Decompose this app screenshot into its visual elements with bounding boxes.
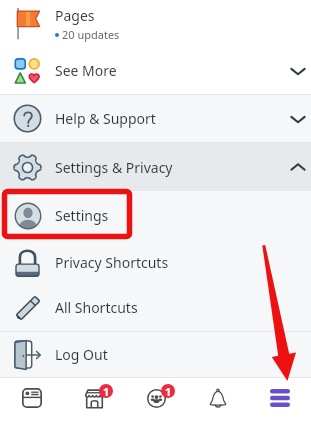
button[interactable]: See More bbox=[0, 47, 311, 94]
staticText: Pages bbox=[55, 6, 95, 25]
staticText: 20 updates bbox=[62, 27, 120, 42]
button[interactable]: Settings & Privacy bbox=[0, 143, 311, 191]
staticText: Privacy Shortcuts bbox=[55, 253, 169, 272]
button[interactable]: Groups bbox=[125, 377, 187, 429]
staticText: Settings bbox=[55, 206, 109, 225]
staticText: Log Out bbox=[55, 345, 108, 364]
button[interactable]: Menu bbox=[249, 377, 311, 429]
staticText: See More bbox=[55, 61, 117, 80]
staticText: 1 bbox=[165, 384, 172, 398]
button[interactable]: Help & Support bbox=[0, 95, 311, 142]
button[interactable]: News Feed bbox=[0, 377, 63, 429]
button[interactable]: Pages bbox=[0, 0, 311, 47]
staticText: Help & Support bbox=[55, 109, 156, 128]
staticText: Settings & Privacy bbox=[55, 158, 173, 177]
button[interactable]: Marketplace bbox=[63, 377, 125, 429]
staticText: 1 bbox=[103, 384, 110, 398]
button[interactable]: Log Out bbox=[0, 332, 311, 377]
button[interactable]: Privacy Shortcuts bbox=[0, 240, 311, 284]
button[interactable]: Notifications bbox=[187, 377, 249, 429]
staticText: All Shortcuts bbox=[55, 298, 138, 317]
button[interactable]: Settings bbox=[0, 191, 311, 240]
button[interactable]: All Shortcuts bbox=[0, 284, 311, 331]
